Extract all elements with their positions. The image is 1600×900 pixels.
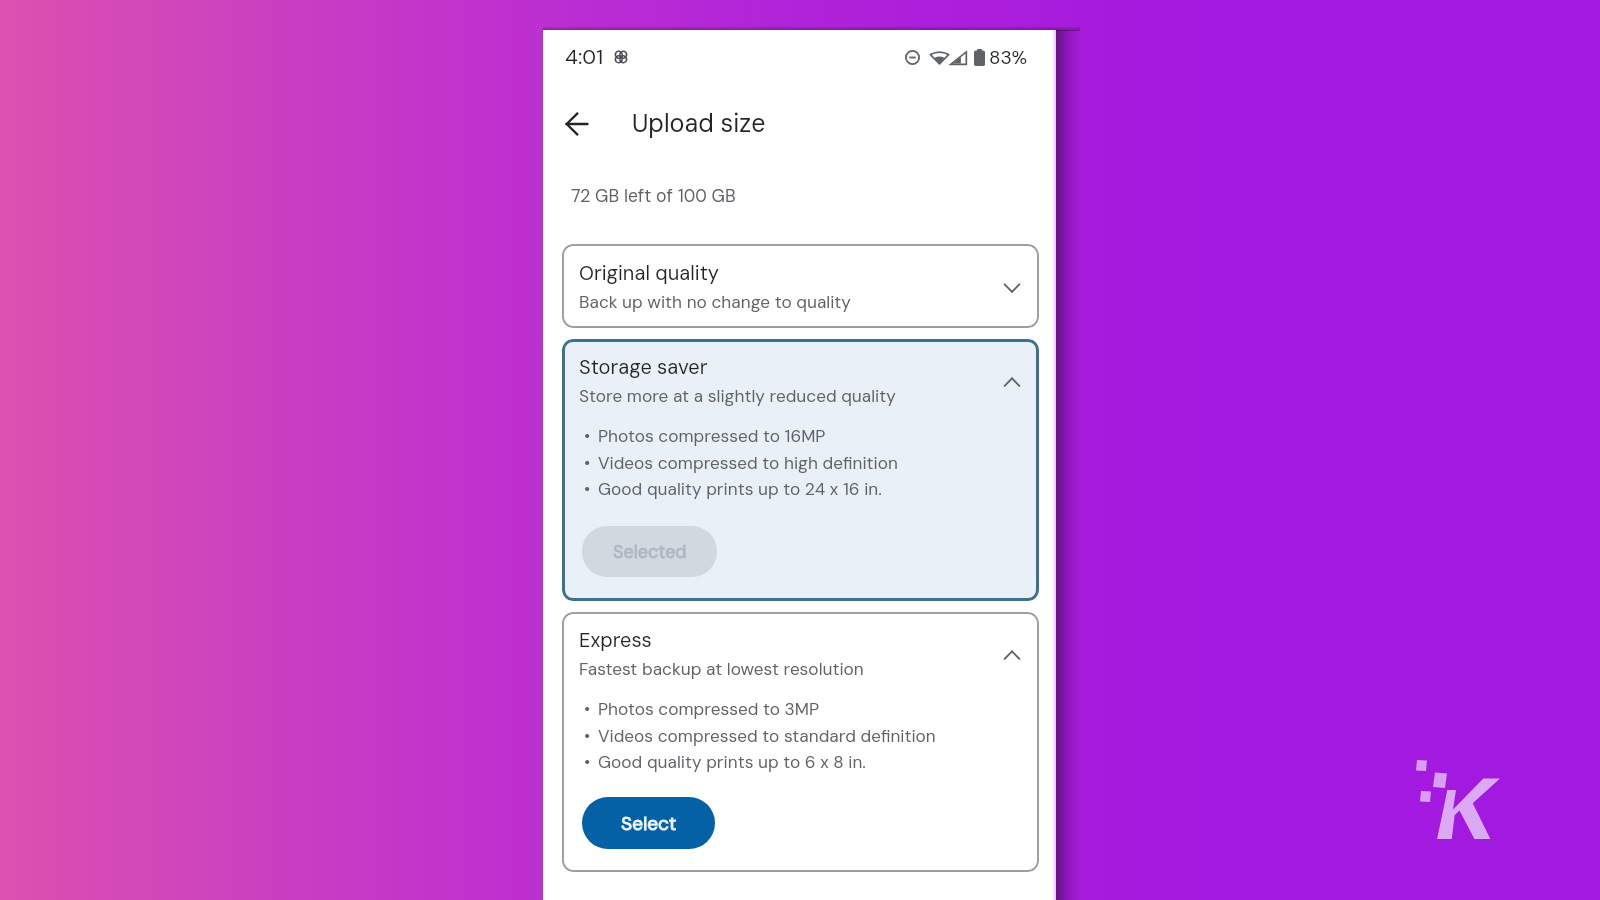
- button[interactable]: Collapse: [992, 635, 1032, 675]
- staticText: Good quality prints up to 24 x 16 in.: [598, 478, 882, 500]
- staticText: Store more at a slightly reduced quality: [579, 385, 896, 407]
- staticText: Back up with no change to quality: [579, 291, 851, 313]
- staticText: 83%: [989, 45, 1028, 70]
- staticText: Storage saver: [579, 354, 708, 380]
- staticText: Upload size: [632, 107, 766, 140]
- staticText: Good quality prints up to 6 x 8 in.: [598, 751, 866, 773]
- staticText: •: [584, 725, 591, 747]
- staticText: •: [584, 425, 591, 447]
- staticText: Photos compressed to 16MP: [598, 425, 826, 447]
- button[interactable]: Collapse: [992, 362, 1032, 402]
- button[interactable]: Back: [553, 100, 601, 148]
- staticText: Fastest backup at lowest resolution: [579, 658, 864, 680]
- button[interactable]: Select: [582, 797, 715, 849]
- button[interactable]: Selected: [582, 526, 717, 577]
- staticText: •: [584, 751, 591, 773]
- button[interactable]: Express: [562, 612, 1039, 872]
- staticText: 4:01: [565, 43, 604, 70]
- staticText: Express: [579, 627, 652, 653]
- staticText: Videos compressed to standard definition: [598, 725, 936, 747]
- staticText: •: [584, 478, 591, 500]
- staticText: Photos compressed to 3MP: [598, 698, 820, 720]
- button[interactable]: Original quality: [562, 244, 1039, 328]
- staticText: Selected: [613, 540, 687, 563]
- button[interactable]: Expand: [992, 268, 1032, 308]
- staticText: Original quality: [579, 260, 719, 286]
- staticText: Videos compressed to high definition: [598, 452, 898, 474]
- button[interactable]: Storage saver: [562, 339, 1039, 601]
- staticText: 72 GB left of 100 GB: [571, 185, 736, 208]
- staticText: Select: [621, 811, 677, 836]
- staticText: •: [584, 452, 591, 474]
- staticText: •: [584, 698, 591, 720]
